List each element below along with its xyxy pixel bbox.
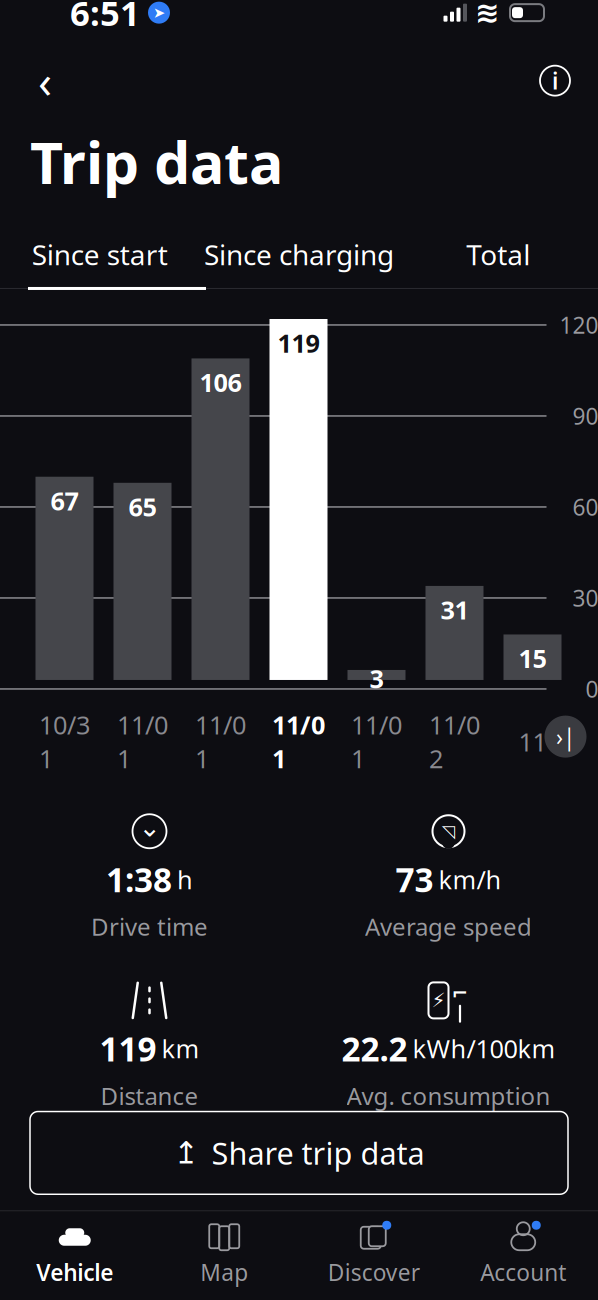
staticText: Trip data (30, 124, 283, 200)
button[interactable]: Map (149, 1211, 299, 1293)
staticText: ‹ (38, 50, 52, 111)
staticText: 1:38 (106, 857, 172, 902)
staticText: 0 (585, 674, 598, 704)
staticText: 11/01 (272, 708, 325, 775)
staticText: 22.2 (341, 1026, 407, 1071)
button[interactable]: Discover (299, 1211, 448, 1293)
button[interactable]: Information (530, 56, 580, 106)
staticText: 30 (572, 583, 598, 613)
button[interactable]: Since start (0, 222, 199, 287)
staticText: i (552, 66, 558, 96)
staticText: 31 (440, 593, 468, 626)
button[interactable]: Vehicle (0, 1211, 149, 1293)
staticText: 11/01 (117, 708, 168, 775)
staticText: 6:51 (70, 0, 140, 36)
staticText: 10/31 (39, 708, 90, 775)
button[interactable]: Account (448, 1211, 598, 1293)
staticText: 120 (559, 310, 598, 340)
button[interactable]: Next page (544, 716, 586, 758)
staticText: 106 (199, 365, 241, 399)
staticText: 119 (277, 326, 319, 360)
staticText: 73 (395, 857, 433, 902)
staticText: Since start (32, 236, 168, 273)
staticText: 11/02 (429, 708, 480, 775)
staticText: 90 (572, 401, 598, 431)
staticText: Discover (328, 1257, 420, 1287)
staticText: km/h (438, 863, 501, 896)
staticText: ›| (556, 722, 575, 752)
staticText: ⌄ (138, 812, 160, 842)
staticText: 119 (99, 1026, 156, 1071)
staticText: kWh/100km (412, 1032, 555, 1065)
staticText: 67 (50, 484, 78, 517)
staticText: ◹ (442, 821, 455, 841)
staticText: h (177, 863, 193, 896)
staticText: ≋ (475, 0, 500, 29)
staticText: 60 (572, 492, 598, 522)
staticText: Account (480, 1257, 566, 1287)
staticText: Avg. consumption (346, 1080, 550, 1112)
staticText: Distance (100, 1080, 198, 1112)
staticText: Average speed (365, 910, 532, 942)
staticText: 11/01 (195, 708, 246, 775)
staticText: ➤ (153, 4, 165, 21)
staticText: 11 (518, 725, 546, 758)
button[interactable]: Back (18, 56, 72, 106)
staticText: Share trip data (211, 1132, 424, 1173)
button[interactable]: ↥ (30, 1111, 568, 1194)
staticText: ⌐ (451, 982, 468, 1005)
staticText: 15 (518, 641, 546, 675)
staticText: ↥ (173, 1135, 199, 1170)
staticText: ⚡︎ (431, 989, 445, 1012)
staticText: 3 (369, 662, 383, 695)
staticText: 11/01 (351, 708, 402, 775)
staticText: 65 (128, 490, 156, 523)
button[interactable]: Total (399, 222, 598, 287)
staticText: Total (466, 236, 530, 273)
staticText: Vehicle (36, 1257, 113, 1287)
staticText: Since charging (204, 236, 394, 273)
staticText: Map (200, 1257, 248, 1287)
staticText: km (161, 1032, 199, 1065)
staticText: Drive time (91, 910, 208, 942)
button[interactable]: Since charging (199, 222, 399, 287)
